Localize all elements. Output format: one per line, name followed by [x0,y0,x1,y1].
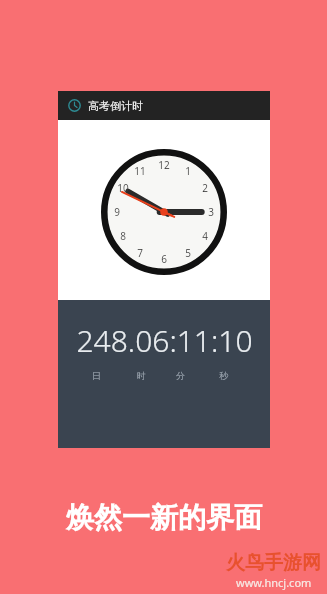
staticText: 分 [176,370,185,381]
staticText: 248.06:11:10 [76,320,253,361]
staticText: 5 [185,246,191,260]
staticText: 2 [202,181,208,195]
staticText: 日 [92,370,101,381]
staticText: 1 [185,164,191,178]
staticText: 4 [202,229,208,243]
staticText: 焕然一新的界面 [66,500,262,535]
staticText: 7 [137,246,143,260]
staticText: 火鸟手游网 [226,551,321,575]
staticText: 8 [120,229,126,243]
staticText: 3 [208,205,214,219]
staticText: 秒 [219,370,228,381]
staticText: 高考倒计时 [88,99,143,113]
other: Clock [68,99,81,112]
button[interactable]: Clock [58,91,270,120]
staticText: www.hncj.com [236,575,312,590]
staticText: 11 [134,164,146,178]
staticText: 12 [158,158,170,172]
staticText: 9 [114,205,120,219]
staticText: 10 [117,181,129,195]
staticText: 时 [137,370,146,381]
staticText: 6 [161,252,167,266]
